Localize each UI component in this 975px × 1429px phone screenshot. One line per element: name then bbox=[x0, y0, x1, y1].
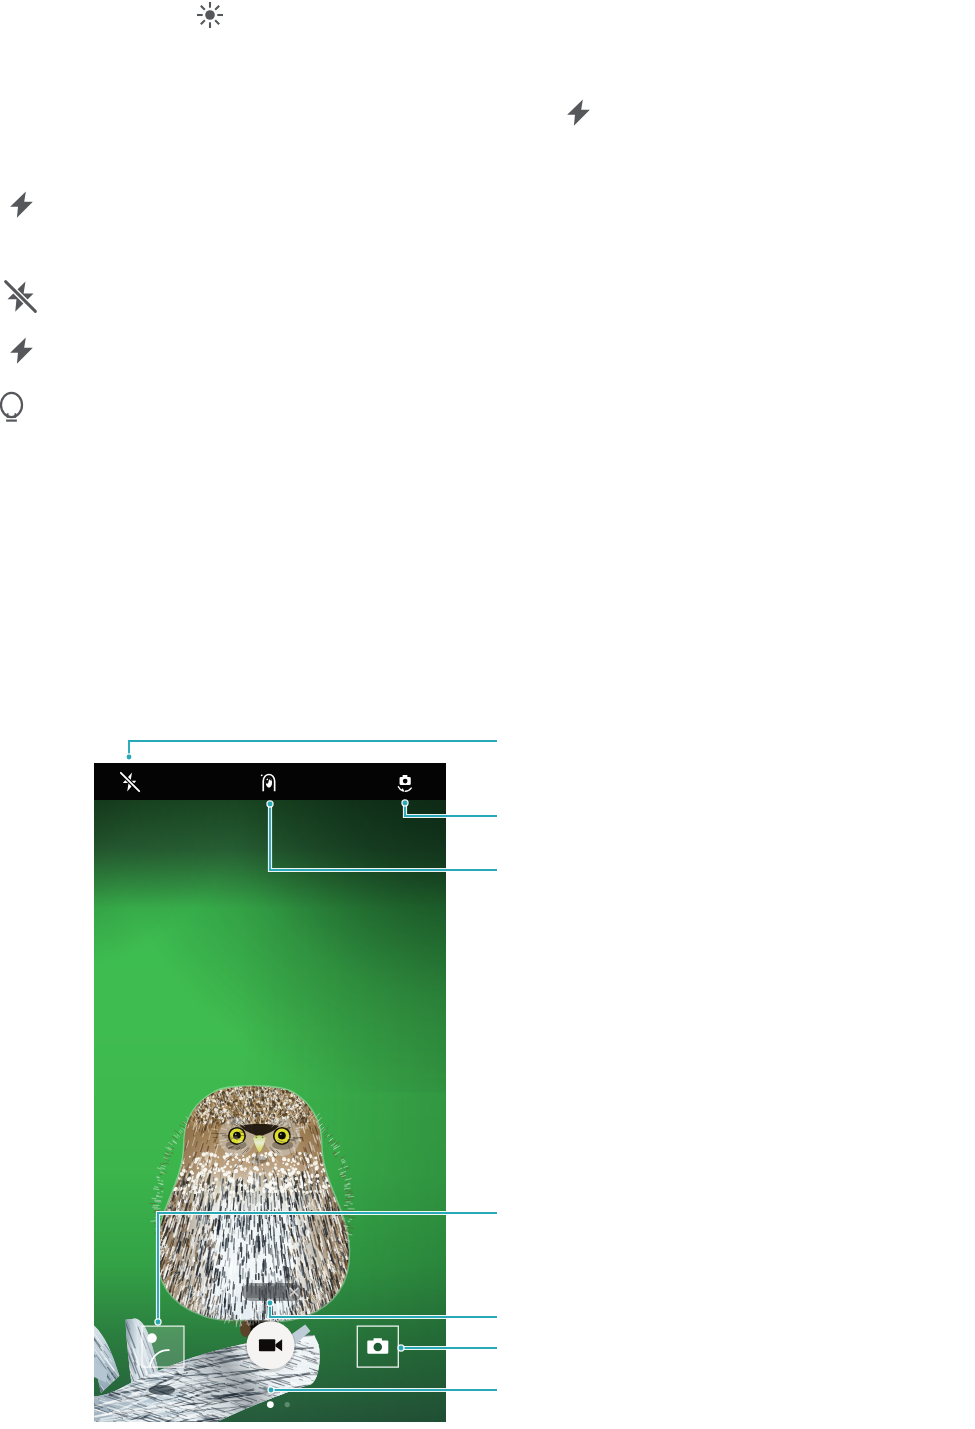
button[interactable]: Camera recording screen illustration bbox=[0, 0, 975, 1429]
